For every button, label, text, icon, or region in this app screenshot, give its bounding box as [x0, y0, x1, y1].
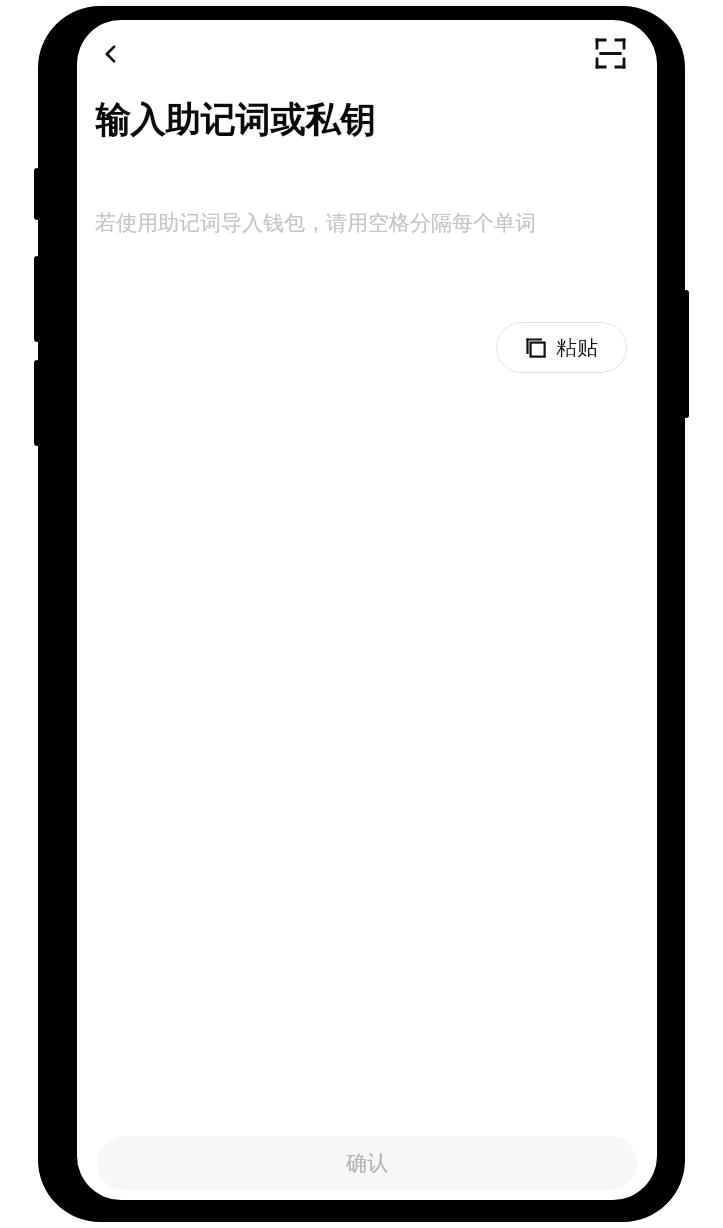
button[interactable]: Back — [85, 28, 137, 80]
staticText: 粘贴 — [556, 335, 598, 361]
staticText: 确认 — [346, 1150, 388, 1176]
button[interactable]: 粘贴 — [496, 322, 627, 373]
staticText: 若使用助记词导入钱包，请用空格分隔每个单词 — [95, 210, 536, 236]
button[interactable]: 确认 — [97, 1136, 637, 1190]
button[interactable]: Scan QR code — [585, 28, 635, 78]
staticText: 输入助记词或私钥 — [95, 98, 375, 142]
